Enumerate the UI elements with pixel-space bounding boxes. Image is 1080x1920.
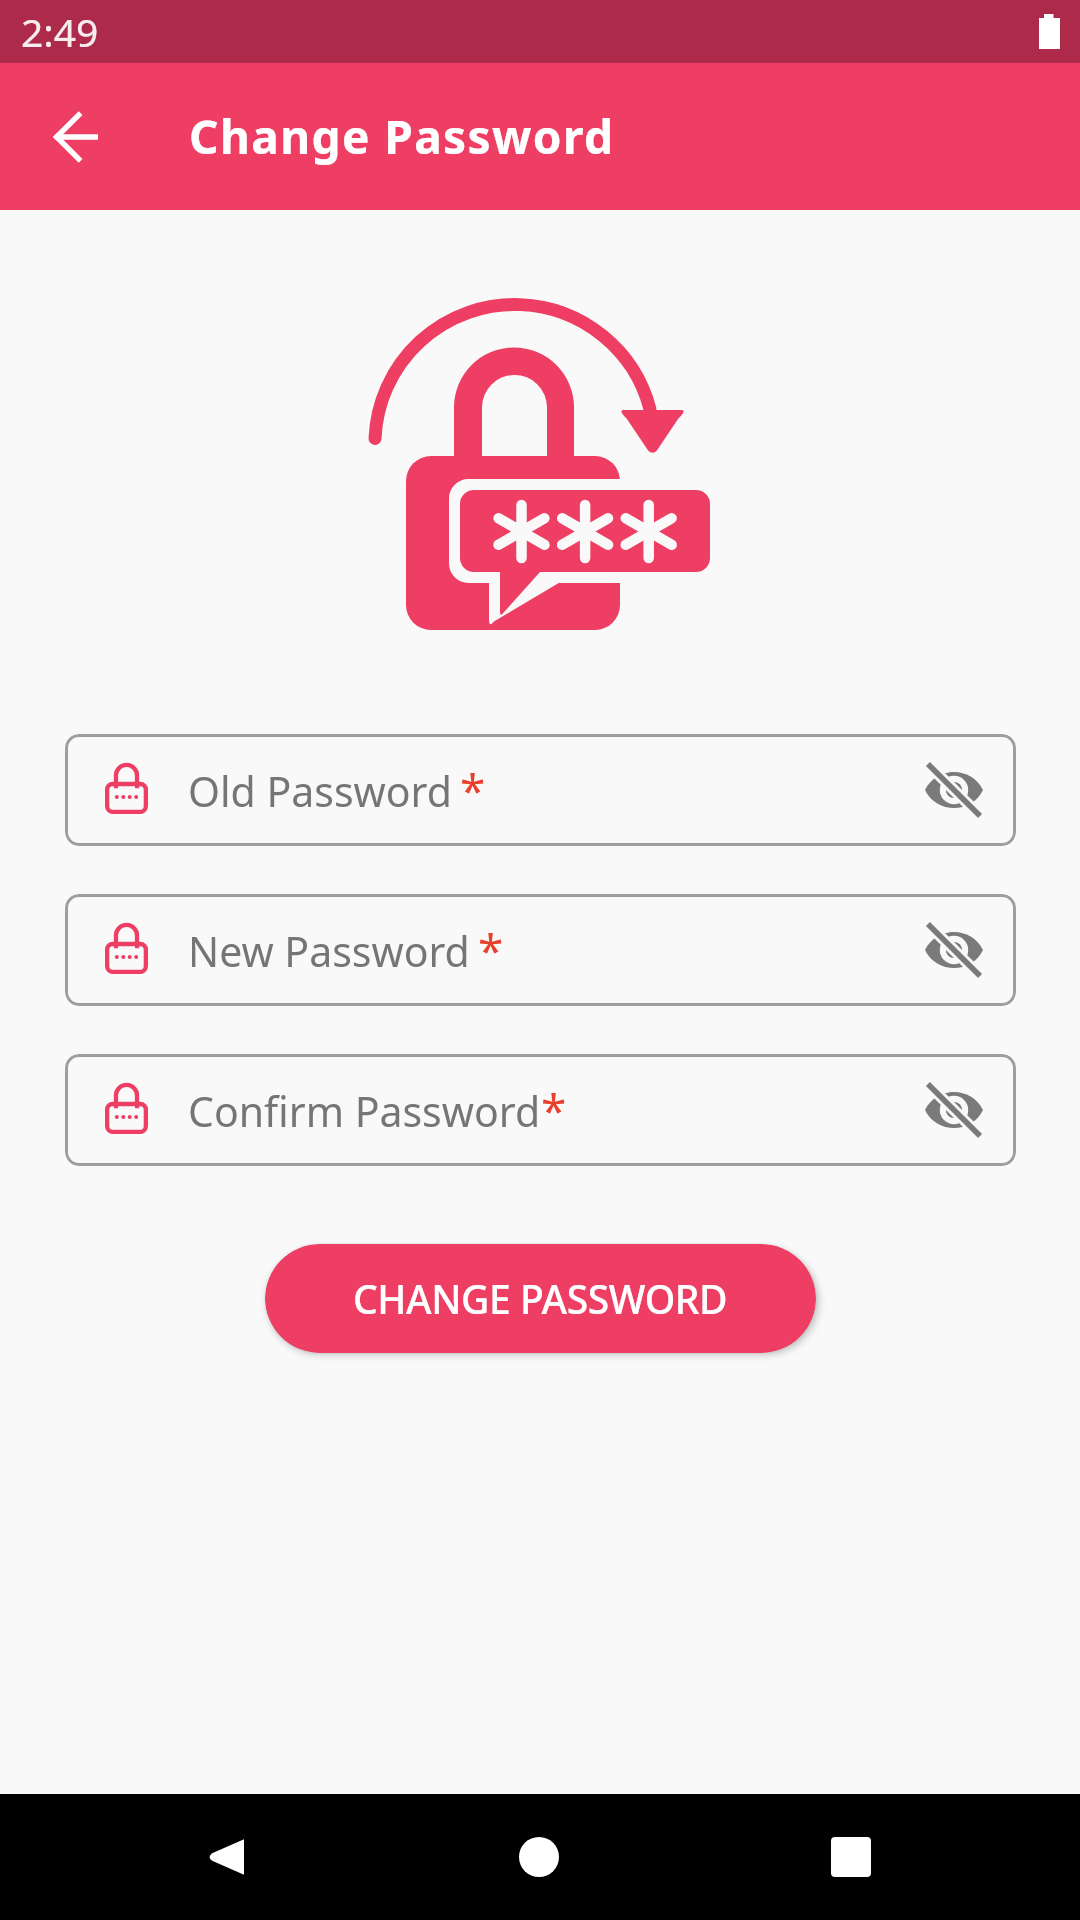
button[interactable]: Toggle password visibility bbox=[904, 740, 1004, 840]
button[interactable]: CHANGE PASSWORD bbox=[265, 1244, 816, 1353]
staticText: Old Password bbox=[188, 763, 452, 819]
staticText: Change Password bbox=[189, 105, 615, 168]
button[interactable]: Toggle password visibility bbox=[904, 900, 1004, 1000]
staticText: CHANGE PASSWORD bbox=[353, 1272, 728, 1325]
staticText: 2:49 bbox=[21, 5, 99, 58]
button[interactable]: New Password bbox=[65, 894, 1016, 1006]
button[interactable]: Back bbox=[28, 89, 124, 185]
button[interactable]: Back bbox=[170, 1802, 280, 1912]
staticText: New Password bbox=[188, 923, 470, 979]
button[interactable]: Toggle password visibility bbox=[904, 1060, 1004, 1160]
button[interactable]: Old Password bbox=[65, 734, 1016, 846]
staticText: Confirm Password bbox=[188, 1083, 541, 1139]
button[interactable]: Recent apps bbox=[796, 1802, 906, 1912]
button[interactable]: Confirm Password bbox=[65, 1054, 1016, 1166]
button[interactable]: Home bbox=[484, 1802, 594, 1912]
staticText: * bbox=[541, 1079, 567, 1142]
staticText: * bbox=[478, 919, 504, 982]
staticText: * bbox=[460, 759, 486, 822]
